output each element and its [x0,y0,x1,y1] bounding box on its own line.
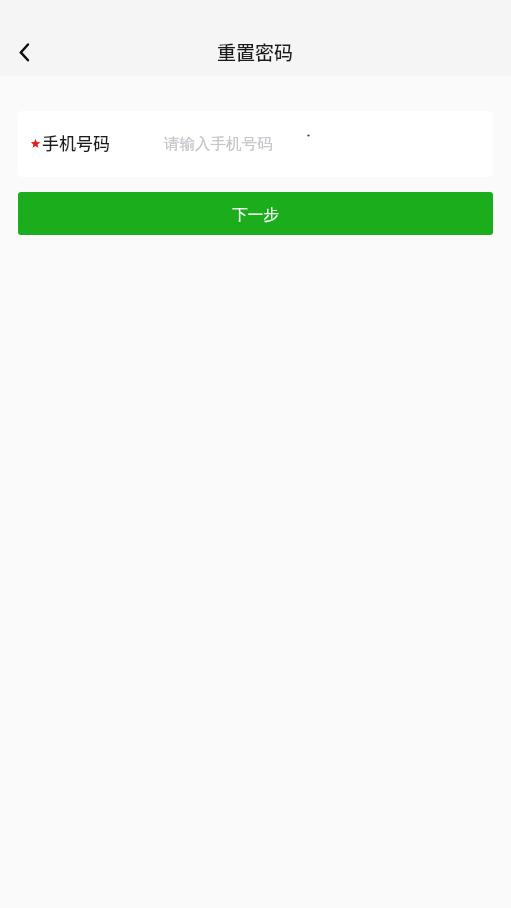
button[interactable]: 下一步 [18,192,493,235]
button[interactable]: Back [0,28,48,76]
button[interactable]: 手机号码 [18,111,493,177]
staticText: 下一步 [232,205,279,225]
staticText: 请输入手机号码 [164,134,273,154]
staticText: 手机号码 [42,130,110,155]
staticText: 重置密码 [217,38,294,66]
